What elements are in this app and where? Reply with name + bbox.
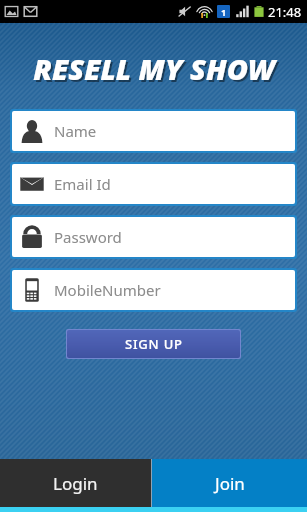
staticText: Password (54, 227, 122, 247)
staticText: Name (54, 121, 97, 141)
button[interactable]: MobileNumber (12, 270, 295, 310)
staticText: SIGN UP (125, 335, 183, 353)
staticText: Join (215, 472, 245, 495)
staticText: 1 (221, 6, 227, 18)
other: Gmail (23, 4, 38, 19)
button[interactable]: Login (0, 459, 151, 507)
staticText: Login (53, 472, 98, 495)
button[interactable]: Name (12, 111, 295, 151)
button[interactable]: SIGN UP (67, 330, 240, 358)
staticText: RESELL MY SHOW (33, 49, 275, 88)
staticText: MobileNumber (54, 280, 161, 300)
staticText: RESELL MY SHOW (35, 51, 277, 90)
button[interactable]: Email Id (12, 164, 295, 204)
other: Gallery (4, 4, 19, 19)
staticText: Email Id (54, 174, 111, 194)
button[interactable]: Password (12, 217, 295, 257)
staticText: 21:48 (268, 3, 302, 21)
button[interactable]: Join (152, 459, 307, 507)
